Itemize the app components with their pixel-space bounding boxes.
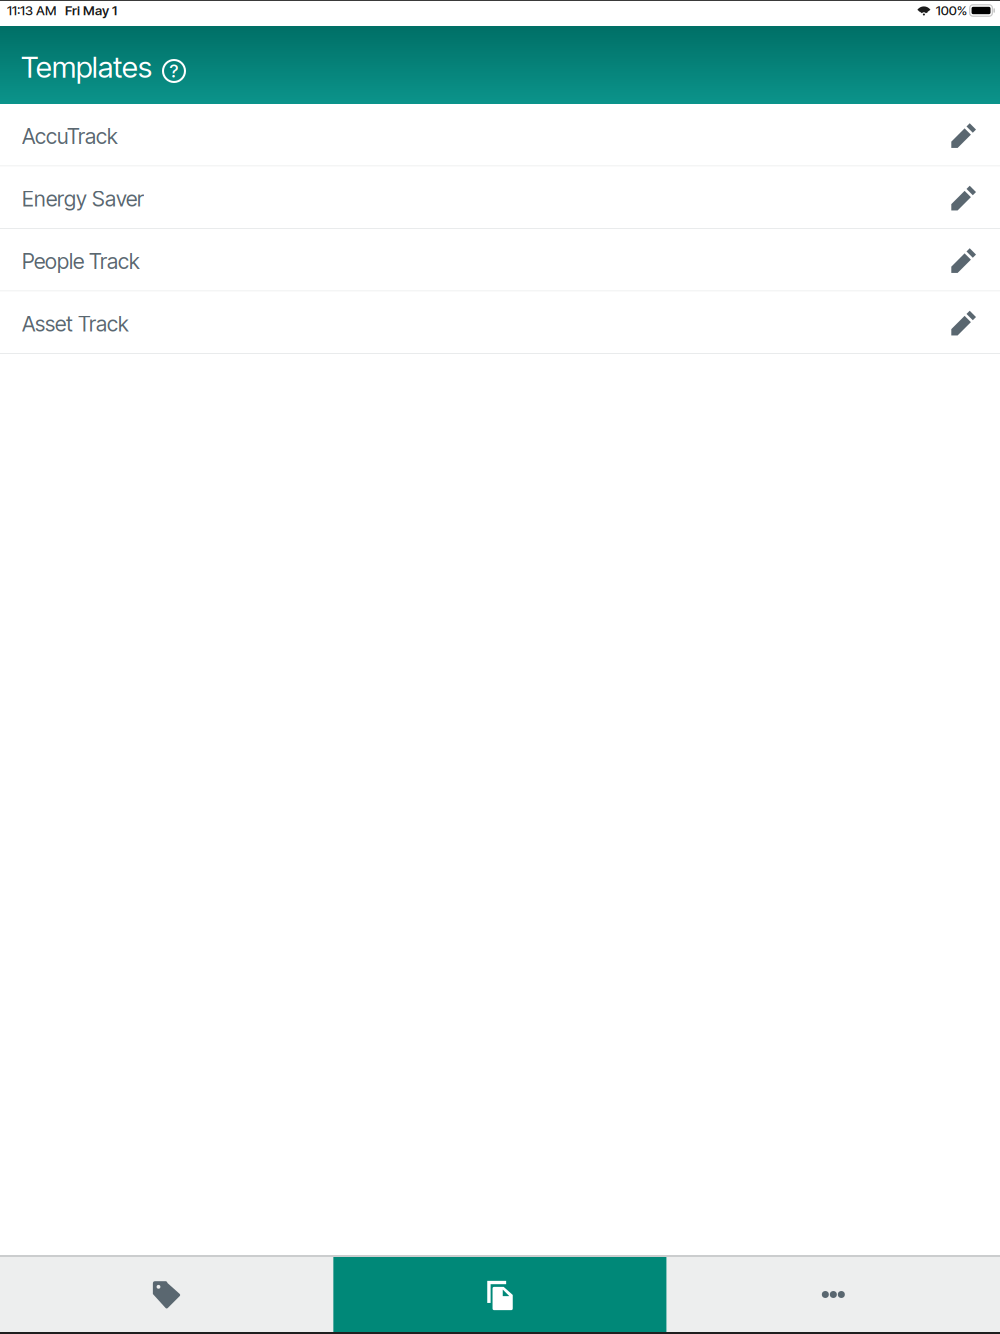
button[interactable]: Asset Track [0,291,1000,354]
button[interactable]: Help [152,49,196,93]
staticText: 100% [936,2,967,18]
staticText: Asset Track [22,311,129,337]
button[interactable]: People Track [0,229,1000,291]
button[interactable]: More [667,1257,1000,1332]
staticText: People Track [22,248,140,274]
staticText: Templates [21,49,152,85]
button[interactable]: AccuTrack [0,104,1000,166]
staticText: 11:13 AM [7,2,56,18]
staticText: Energy Saver [22,186,144,212]
staticText: ? [169,60,178,82]
staticText: Fri May 1 [65,2,117,18]
button[interactable]: Energy Saver [0,166,1000,229]
button[interactable]: Tags [0,1257,333,1332]
button[interactable]: Templates [333,1257,667,1332]
staticText: AccuTrack [22,123,118,149]
